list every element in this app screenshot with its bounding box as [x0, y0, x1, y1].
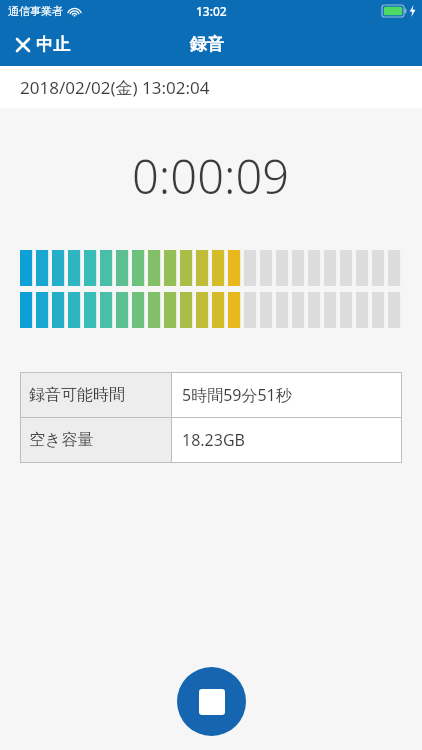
staticText: 13:02	[196, 3, 227, 19]
staticText: 2018/02/02(金) 13:02:04	[20, 76, 210, 99]
staticText: 中止	[36, 34, 70, 55]
staticText: 空き容量	[29, 430, 94, 450]
button[interactable]: 中止	[0, 26, 86, 63]
staticText: 録音	[190, 34, 224, 55]
staticText: 18.23GB	[182, 429, 245, 451]
staticText: 録音可能時間	[29, 385, 125, 405]
button[interactable]: 停止	[177, 667, 246, 736]
staticText: 通信事業者	[8, 4, 63, 18]
staticText: 5時間59分51秒	[182, 384, 292, 406]
staticText: 0:00:09	[132, 144, 290, 208]
